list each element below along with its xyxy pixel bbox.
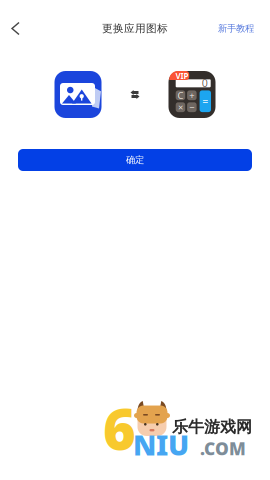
staticText: VIP xyxy=(176,70,189,81)
button[interactable]: 新手教程 xyxy=(204,11,270,46)
button[interactable]: 确定 xyxy=(18,149,252,171)
staticText: 6 xyxy=(103,391,136,465)
staticText: 乐牛游戏网 xyxy=(172,417,252,437)
staticText: 确定 xyxy=(126,154,144,166)
staticText: 新手教程 xyxy=(218,23,254,34)
staticText: C xyxy=(177,89,183,101)
staticText: .COM xyxy=(200,437,246,460)
button[interactable]: Back xyxy=(0,10,33,46)
staticText: − xyxy=(189,101,194,113)
staticText: 更换应用图标 xyxy=(102,22,168,35)
staticText: × xyxy=(178,101,183,113)
button[interactable]: New app icon xyxy=(168,71,215,118)
staticText: NIU xyxy=(133,426,189,463)
staticText: 0 xyxy=(202,76,208,90)
staticText: + xyxy=(189,89,194,101)
staticText: = xyxy=(202,94,208,108)
button[interactable]: Current app icon xyxy=(54,71,101,118)
